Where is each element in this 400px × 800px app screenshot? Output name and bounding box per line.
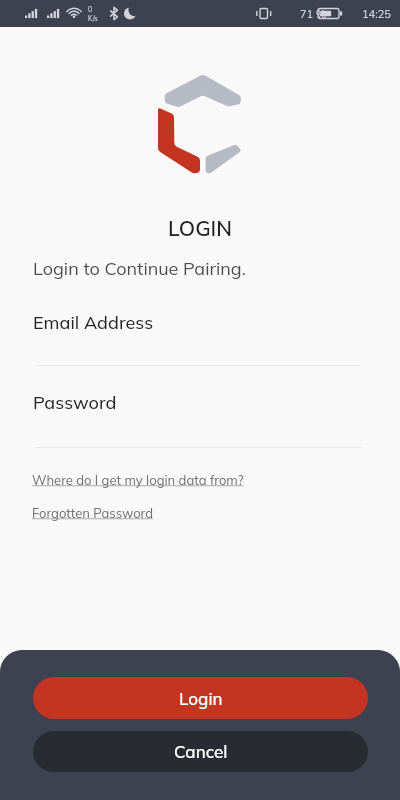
button[interactable]: Cancel — [33, 731, 368, 772]
button[interactable]: Login — [33, 677, 368, 719]
staticText: Login to Continue Pairing. — [33, 257, 246, 280]
button[interactable]: Where do I get my login data from? — [32, 472, 244, 488]
staticText: 71 % — [300, 7, 327, 21]
staticText: LOGIN — [168, 215, 233, 241]
staticText: Email Address — [33, 311, 154, 334]
button[interactable]: Password — [0, 391, 400, 449]
staticText: 14:25 — [362, 7, 391, 21]
staticText: Password — [33, 391, 117, 414]
staticText: Cancel — [174, 741, 228, 762]
staticText: 0 — [88, 5, 93, 14]
staticText: Login — [179, 688, 223, 709]
staticText: K/s — [88, 14, 98, 23]
button[interactable]: Forgotten Password — [32, 505, 154, 521]
button[interactable]: Email Address — [0, 311, 400, 367]
